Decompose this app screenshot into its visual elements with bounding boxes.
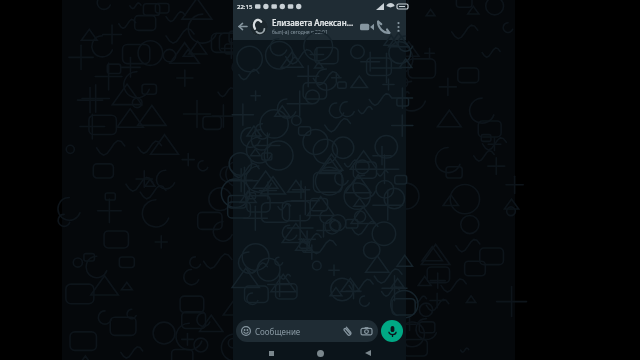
button[interactable]: Back (236, 20, 249, 33)
button[interactable]: Video call (358, 13, 375, 40)
button[interactable]: Елизавета Алексан… (272, 17, 358, 36)
staticText: Елизавета Алексан… (272, 17, 354, 28)
button[interactable]: Recent apps (260, 346, 282, 360)
button[interactable]: Camera (359, 324, 373, 338)
button[interactable]: Voice call (375, 13, 392, 40)
staticText: Сообщение (255, 326, 301, 337)
staticText: 22:15 (237, 3, 253, 11)
button[interactable]: Home (309, 346, 331, 360)
button[interactable]: Back (357, 346, 379, 360)
button[interactable]: Сообщение (236, 320, 378, 342)
button[interactable]: More options (392, 13, 405, 40)
button[interactable]: Attach (341, 324, 355, 338)
button[interactable]: Record voice message (381, 320, 403, 342)
staticText: был(-а) сегодня в 22:01 (272, 29, 328, 36)
button[interactable]: Contact photo (250, 18, 268, 36)
